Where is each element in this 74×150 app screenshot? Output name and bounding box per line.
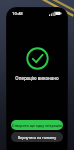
staticText: Створити ще одну операцію (12, 123, 62, 128)
staticText: Операцію виконано (15, 75, 59, 81)
other: Success (26, 47, 49, 70)
button[interactable]: Створити ще одну операцію (11, 120, 63, 130)
staticText: 10:48 (12, 11, 23, 17)
staticText: Вернутися на головну (18, 135, 56, 140)
button[interactable]: Вернутися на головну (11, 132, 63, 142)
